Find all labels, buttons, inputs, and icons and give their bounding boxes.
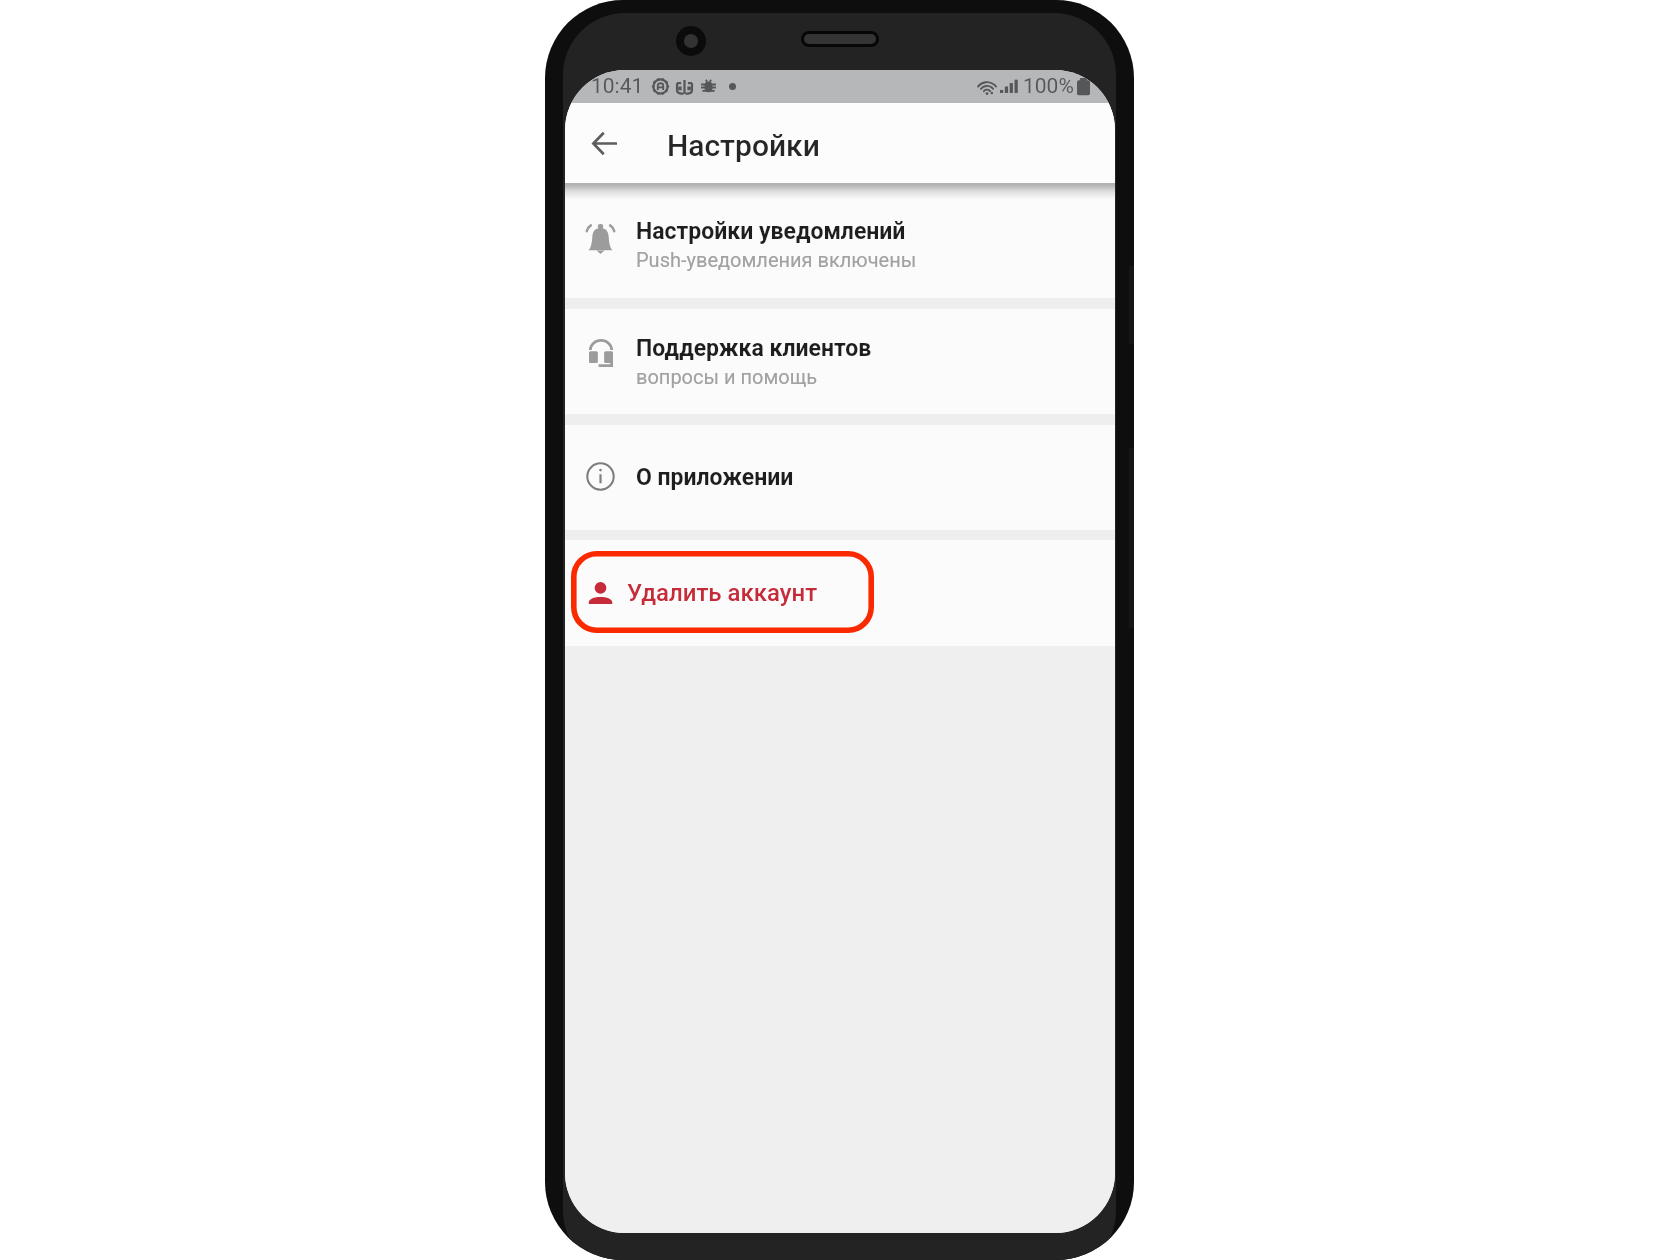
button[interactable]: Поддержка клиентов — [565, 309, 1115, 414]
staticText: вопросы и помощь — [636, 365, 818, 388]
staticText: 10:41 — [591, 74, 644, 99]
button[interactable]: Back — [574, 103, 634, 183]
button[interactable]: Настройки уведомлений — [565, 190, 1115, 298]
staticText: Настройки уведомлений — [636, 218, 906, 245]
staticText: О приложении — [636, 464, 794, 491]
staticText: 100% — [1023, 74, 1074, 99]
button[interactable]: О приложении — [565, 425, 1115, 530]
staticText: Push-уведомления включены — [636, 248, 917, 271]
staticText: Удалить аккаунт — [627, 579, 818, 607]
staticText: Поддержка клиентов — [636, 335, 872, 362]
button[interactable]: Удалить аккаунт — [565, 540, 1115, 646]
staticText: Настройки — [667, 128, 820, 163]
